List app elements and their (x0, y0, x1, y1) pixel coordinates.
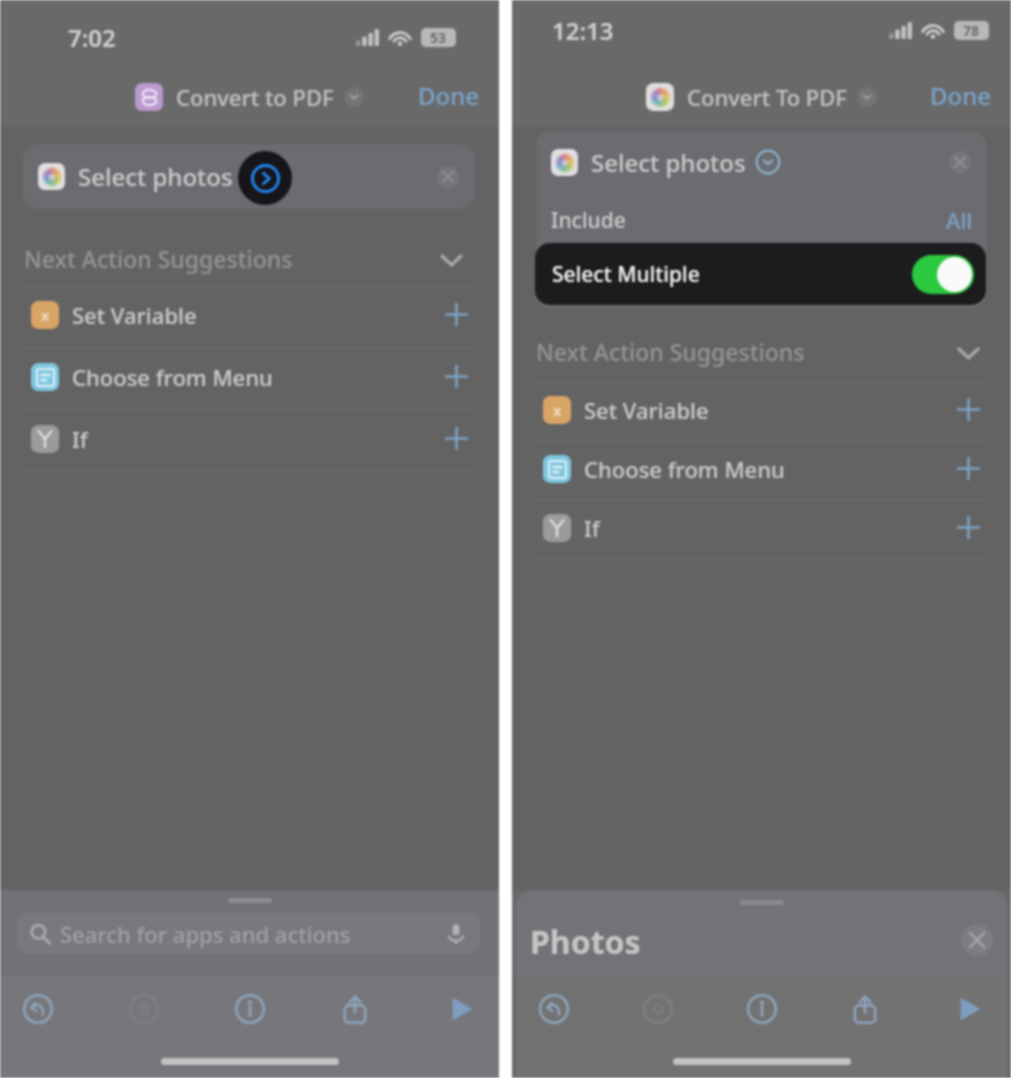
button[interactable]: x (22, 284, 475, 345)
other: Remove (949, 151, 971, 173)
button[interactable]: Info (744, 991, 780, 1027)
staticText: Include (551, 206, 626, 235)
other: Add Choose from Menu (958, 458, 979, 479)
button[interactable]: Share (337, 991, 373, 1027)
other: Add If (446, 428, 467, 449)
staticText: Set Variable (72, 300, 197, 330)
staticText: If (72, 424, 88, 454)
staticText: x (41, 305, 50, 325)
button[interactable]: Info (232, 991, 268, 1027)
other: Add Set Variable (446, 304, 467, 325)
button[interactable]: Select photos (23, 144, 475, 209)
button[interactable]: Close (961, 924, 993, 956)
staticText: Convert To PDF (687, 82, 847, 112)
button[interactable]: Choose from Menu (22, 346, 475, 407)
staticText: 78 (963, 21, 980, 40)
other: Add If (958, 517, 979, 538)
button[interactable]: Search for apps and actions (17, 913, 480, 954)
staticText: 7:02 (68, 21, 116, 54)
button[interactable]: Play (951, 991, 987, 1027)
button[interactable]: Select photos (536, 131, 987, 193)
button[interactable]: Next Action Suggestions (536, 334, 980, 372)
button[interactable]: Select Multiple (535, 243, 986, 305)
staticText: 53 (430, 28, 447, 47)
staticText: Done (930, 79, 992, 112)
staticText: Done (418, 79, 480, 112)
staticText: Select photos (78, 160, 233, 193)
button[interactable]: Choose from Menu (534, 438, 987, 499)
button[interactable]: Include (551, 191, 973, 249)
staticText: Next Action Suggestions (536, 336, 805, 367)
button[interactable]: Redo (640, 991, 676, 1027)
button[interactable]: Share (847, 991, 883, 1027)
button[interactable]: Undo (536, 991, 572, 1027)
staticText: Set Variable (584, 395, 709, 425)
staticText: Photos (530, 920, 641, 964)
staticText: Search for apps and actions (60, 919, 351, 949)
staticText: 12:13 (552, 14, 614, 47)
staticText: Select photos (591, 146, 746, 179)
staticText: Choose from Menu (72, 362, 273, 392)
staticText: If (584, 513, 600, 543)
staticText: Convert to PDF (176, 82, 334, 112)
other: Add Set Variable (958, 399, 979, 420)
button[interactable]: If (22, 408, 475, 469)
staticText: Choose from Menu (584, 454, 785, 484)
other: Remove (437, 166, 459, 188)
other: Add Choose from Menu (446, 366, 467, 387)
button[interactable]: Done (418, 79, 480, 112)
staticText: x (553, 400, 562, 420)
staticText: Select Multiple (552, 260, 700, 289)
button[interactable]: If (534, 497, 987, 558)
staticText: All (946, 205, 973, 235)
button[interactable]: Done (930, 79, 992, 112)
button[interactable]: Play (443, 991, 479, 1027)
staticText: Next Action Suggestions (24, 243, 293, 274)
button[interactable]: x (534, 379, 987, 440)
button[interactable]: Next Action Suggestions (24, 241, 463, 279)
button[interactable]: Expand action (238, 151, 292, 205)
button[interactable]: Undo (20, 991, 56, 1027)
